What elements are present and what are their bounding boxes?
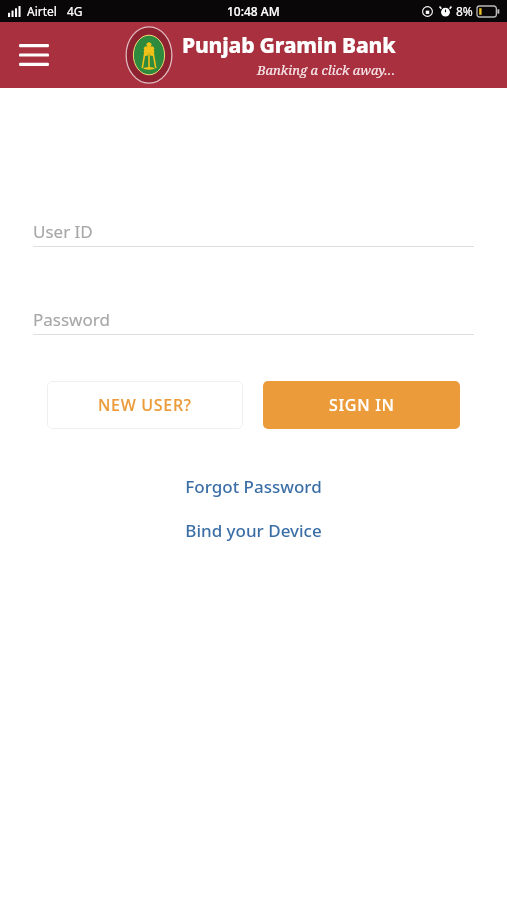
button[interactable]: NEW USER? bbox=[47, 381, 243, 429]
staticText: Password bbox=[33, 308, 110, 331]
staticText: Airtel bbox=[27, 3, 57, 19]
button[interactable]: SIGN IN bbox=[263, 381, 460, 429]
button[interactable]: Open navigation menu bbox=[12, 33, 56, 77]
button[interactable]: Bind your Device bbox=[0, 519, 507, 542]
staticText: Forgot Password bbox=[185, 475, 322, 498]
staticText: User ID bbox=[33, 220, 93, 243]
staticText: Banking a click away… bbox=[257, 61, 396, 79]
staticText: Bind your Device bbox=[185, 519, 322, 542]
staticText: 4G bbox=[67, 3, 83, 19]
staticText: SIGN IN bbox=[329, 394, 395, 416]
button[interactable]: Forgot Password bbox=[0, 475, 507, 498]
button[interactable]: Password bbox=[33, 304, 474, 335]
staticText: Punjab Gramin Bank bbox=[182, 31, 396, 60]
staticText: 10:48 AM bbox=[227, 3, 280, 19]
staticText: NEW USER? bbox=[98, 394, 192, 416]
staticText: 8% bbox=[456, 3, 473, 19]
button[interactable]: User ID bbox=[33, 216, 474, 247]
